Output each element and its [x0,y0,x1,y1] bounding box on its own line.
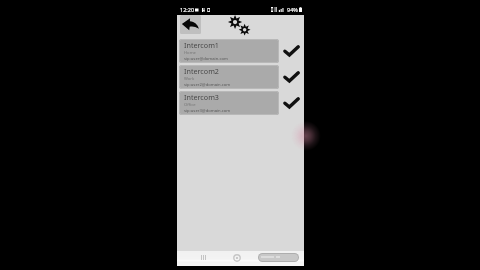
staticText: Intercom2 [184,66,219,76]
staticText: Intercom1 [184,40,219,50]
button[interactable]: Recent apps [194,251,212,266]
staticText: 94% [287,6,298,13]
staticText: sip:user@domain.com [184,56,228,62]
staticText: Intercom3 [184,92,219,102]
staticText: sip:user2@domain.com [184,82,231,88]
button[interactable]: Selected [279,39,304,63]
staticText: Work [184,76,195,82]
staticText: Office [184,102,196,108]
button[interactable]: Intercom3 [177,91,304,115]
button[interactable]: Selected [279,91,304,115]
button[interactable]: Settings [227,14,251,38]
button[interactable]: Back [180,15,201,34]
staticText: sip:user3@domain.com [184,108,231,114]
button[interactable]: Intercom2 [177,65,304,89]
button[interactable]: Intercom1 [177,39,304,63]
button[interactable]: Selected [279,65,304,89]
button[interactable]: Home [228,251,246,266]
staticText: 12:20 [180,6,195,13]
staticText: Home [184,50,196,56]
button[interactable]: Switch keyboard [258,253,299,262]
